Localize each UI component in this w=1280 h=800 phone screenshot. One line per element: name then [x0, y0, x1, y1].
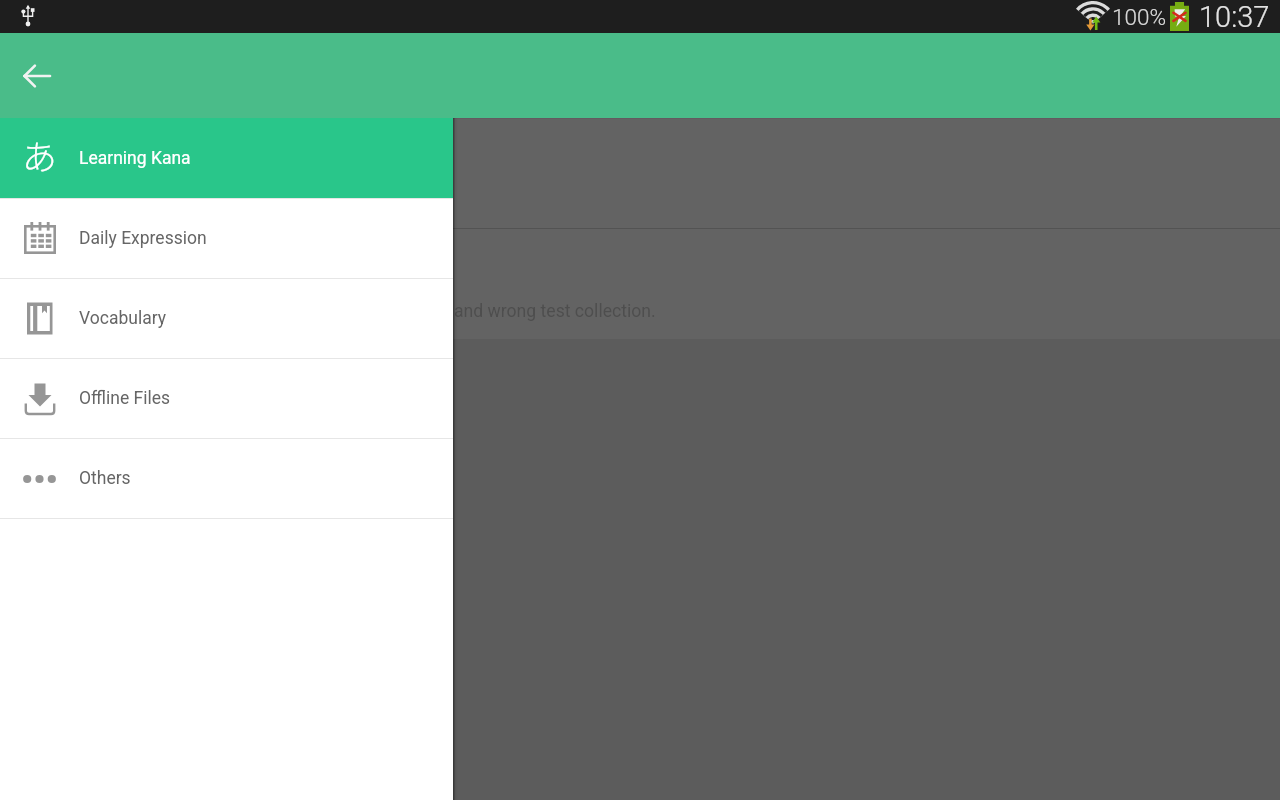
staticText: Others: [79, 468, 131, 489]
staticText: 100%: [1112, 4, 1167, 30]
staticText: and wrong test collection.: [454, 301, 656, 322]
staticText: Offline Files: [79, 388, 171, 409]
button[interactable]: Back: [8, 47, 66, 105]
button[interactable]: Vocabulary: [0, 279, 453, 358]
staticText: Learning Kana: [79, 148, 191, 169]
button[interactable]: Close navigation drawer: [458, 118, 1280, 800]
staticText: Daily Expression: [79, 228, 207, 249]
staticText: 10:37: [1199, 0, 1270, 33]
button[interactable]: Offline Files: [0, 359, 453, 438]
button[interactable]: Others: [0, 439, 453, 518]
button[interactable]: あ: [0, 118, 453, 198]
staticText: あ: [22, 129, 58, 173]
staticText: Vocabulary: [79, 308, 167, 329]
button[interactable]: Daily Expression: [0, 199, 453, 278]
